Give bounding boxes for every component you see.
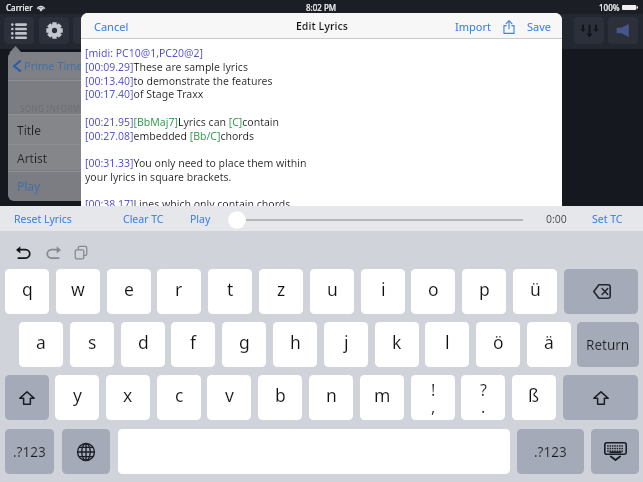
staticText: .?123 xyxy=(13,443,46,461)
staticText: Cancel xyxy=(94,19,129,34)
button[interactable]: Backspace xyxy=(564,269,638,314)
button[interactable]: j xyxy=(324,322,368,367)
button[interactable]: Hide keyboard xyxy=(591,429,639,474)
button[interactable]: v xyxy=(207,375,251,420)
button[interactable]: n xyxy=(309,375,353,420)
staticText: ü xyxy=(530,277,541,301)
button[interactable]: o xyxy=(411,269,455,314)
staticText: ö xyxy=(493,330,504,354)
button[interactable]: Play xyxy=(184,206,217,231)
button[interactable]: b xyxy=(258,375,302,420)
button[interactable]: y xyxy=(55,375,99,420)
button[interactable]: .?123 xyxy=(5,429,54,474)
button[interactable]: Paste xyxy=(68,241,94,264)
button[interactable]: Playback position xyxy=(228,211,246,229)
button[interactable]: Transpose down xyxy=(574,17,604,44)
staticText: Save xyxy=(527,19,552,34)
button[interactable]: c xyxy=(157,375,201,420)
staticText: .?123 xyxy=(534,443,567,461)
button[interactable]: w xyxy=(56,269,100,314)
staticText: [00:21.95][BbMaj7]Lyrics can [C]contain xyxy=(85,115,280,129)
button[interactable]: Import xyxy=(451,14,495,39)
button[interactable]: ? xyxy=(461,375,505,420)
button[interactable]: q xyxy=(5,269,49,314)
button[interactable]: z xyxy=(259,269,303,314)
button[interactable]: Title xyxy=(8,115,198,144)
button[interactable]: Clear TC xyxy=(117,206,170,231)
button[interactable]: Save xyxy=(523,14,556,39)
button[interactable]: Reset Lyrics xyxy=(8,206,78,231)
staticText: c xyxy=(175,383,184,407)
button[interactable]: More xyxy=(73,17,103,44)
staticText: ß xyxy=(528,383,540,407)
staticText: s xyxy=(88,330,97,354)
button[interactable]: g xyxy=(222,322,266,367)
button[interactable]: s xyxy=(70,322,114,367)
button[interactable]: Redo xyxy=(40,241,68,264)
staticText: Reset Lyrics xyxy=(14,212,72,226)
staticText: [00:17.40]of Stage Traxx xyxy=(85,87,204,101)
staticText: j xyxy=(344,330,349,354)
staticText: 100% xyxy=(599,2,620,13)
button[interactable]: Return xyxy=(577,322,639,367)
staticText: Play xyxy=(17,178,41,194)
button[interactable]: Cancel xyxy=(81,14,139,39)
button[interactable]: i xyxy=(361,269,405,314)
button[interactable]: Share xyxy=(501,17,517,37)
button[interactable]: Artist xyxy=(8,145,198,170)
staticText: Play xyxy=(190,212,211,226)
button[interactable]: Settings xyxy=(39,17,69,44)
staticText: , xyxy=(431,396,436,418)
button[interactable]: r xyxy=(157,269,201,314)
button[interactable]: Shift xyxy=(563,375,638,420)
button[interactable]: k xyxy=(375,322,419,367)
button[interactable]: x xyxy=(106,375,150,420)
staticText: your lyrics in square brackets. xyxy=(85,170,232,184)
staticText: ä xyxy=(544,330,554,354)
staticText: 8:02 PM xyxy=(306,2,337,13)
button[interactable]: Undo xyxy=(9,241,37,264)
button[interactable]: ö xyxy=(476,322,520,367)
staticText: ? xyxy=(480,379,487,401)
button[interactable]: Set TC xyxy=(588,208,627,230)
button[interactable]: m xyxy=(360,375,404,420)
staticText: 0:00 xyxy=(546,212,567,226)
staticText: p xyxy=(479,277,490,301)
button[interactable]: e xyxy=(107,269,151,314)
staticText: m xyxy=(374,383,391,407)
staticText: Set TC xyxy=(592,212,623,226)
staticText: w xyxy=(71,277,85,301)
button[interactable]: d xyxy=(121,322,165,367)
button[interactable]: l xyxy=(425,322,469,367)
staticText: Clear TC xyxy=(123,212,164,226)
button[interactable]: u xyxy=(310,269,354,314)
button[interactable]: Prime Time xyxy=(8,52,198,79)
staticText: r xyxy=(175,277,183,301)
button[interactable]: f xyxy=(171,322,215,367)
button[interactable]: ! xyxy=(411,375,455,420)
staticText: [00:09.29]These are sample lyrics xyxy=(85,60,248,74)
staticText: q xyxy=(22,277,33,301)
staticText: Return xyxy=(586,336,630,354)
button[interactable]: a xyxy=(19,322,63,367)
button[interactable]: ü xyxy=(513,269,557,314)
button[interactable]: t xyxy=(208,269,252,314)
button[interactable]: h xyxy=(273,322,317,367)
button[interactable]: Next keyboard xyxy=(62,429,110,474)
button[interactable]: Song list xyxy=(4,17,34,44)
staticText: o xyxy=(428,277,439,301)
staticText: Carrier xyxy=(6,2,33,13)
button[interactable]: Shift xyxy=(5,375,49,420)
button[interactable]: ß xyxy=(512,375,556,420)
button[interactable]: ä xyxy=(527,322,571,367)
staticText: h xyxy=(290,330,301,354)
staticText: e xyxy=(124,277,134,301)
button[interactable]: Play xyxy=(8,171,198,200)
button[interactable]: .?123 xyxy=(517,429,584,474)
button[interactable]: Volume xyxy=(608,17,638,44)
staticText: g xyxy=(239,330,250,354)
button[interactable]: p xyxy=(462,269,506,314)
